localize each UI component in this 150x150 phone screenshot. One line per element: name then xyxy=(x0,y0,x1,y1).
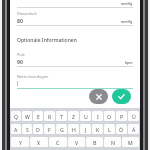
staticText: X xyxy=(37,139,41,146)
button[interactable]: N xyxy=(104,137,121,147)
staticText: 90 xyxy=(17,58,23,65)
button[interactable]: Puls xyxy=(17,52,133,67)
button[interactable]: Notiz hinzufügen xyxy=(17,74,133,89)
button[interactable]: O xyxy=(104,111,115,121)
staticText: Diastolisch xyxy=(17,11,37,16)
button[interactable]: Y xyxy=(11,137,29,147)
button[interactable]: D xyxy=(33,124,43,134)
button[interactable]: V xyxy=(68,137,85,147)
staticText: mmHg xyxy=(121,1,133,6)
button[interactable]: Diastolisch xyxy=(17,11,133,26)
staticText: P xyxy=(120,113,124,120)
button[interactable]: Ü xyxy=(128,111,139,121)
staticText: C xyxy=(56,139,60,146)
button[interactable]: A xyxy=(11,124,21,134)
staticText: Q xyxy=(14,113,19,120)
staticText: E xyxy=(37,113,40,120)
staticText: N xyxy=(111,139,115,146)
button[interactable]: I xyxy=(92,111,103,121)
staticText: J xyxy=(85,126,87,133)
staticText: Ü xyxy=(132,113,136,120)
staticText: I xyxy=(97,113,99,120)
button[interactable]: Ä xyxy=(128,124,139,134)
staticText: V xyxy=(75,139,79,146)
staticText: Notiz hinzufügen xyxy=(17,74,49,79)
button[interactable]: Q xyxy=(11,111,21,121)
staticText: D xyxy=(36,126,40,133)
staticText: S xyxy=(26,126,29,133)
button[interactable]: M xyxy=(122,137,139,147)
button[interactable]: K xyxy=(92,124,103,134)
button[interactable]: G xyxy=(56,124,67,134)
staticText: U xyxy=(84,113,88,120)
staticText: G xyxy=(60,126,64,133)
button[interactable]: S xyxy=(22,124,32,134)
staticText: F xyxy=(48,126,51,133)
button[interactable]: U xyxy=(80,111,91,121)
button[interactable]: Z xyxy=(68,111,79,121)
button[interactable]: T xyxy=(56,111,67,121)
staticText: mmHg xyxy=(121,19,133,24)
staticText: Ä xyxy=(132,126,136,133)
button[interactable]: Speichern xyxy=(112,89,131,104)
button[interactable]: R xyxy=(44,111,55,121)
staticText: Optionale Informationen xyxy=(17,37,77,44)
button[interactable]: C xyxy=(49,137,67,147)
button[interactable]: B xyxy=(86,137,103,147)
button[interactable]: X xyxy=(30,137,48,147)
staticText: K xyxy=(96,126,100,133)
staticText: Y xyxy=(19,139,22,146)
button[interactable]: E xyxy=(33,111,43,121)
staticText: O xyxy=(107,113,112,120)
staticText: M xyxy=(128,139,133,146)
staticText: W xyxy=(25,113,30,120)
button[interactable]: H xyxy=(68,124,79,134)
staticText: bpm xyxy=(125,60,133,65)
staticText: B xyxy=(93,139,97,146)
staticText: L xyxy=(108,126,111,133)
staticText: Z xyxy=(72,113,75,120)
button[interactable]: Ö xyxy=(116,124,127,134)
staticText: A xyxy=(14,126,18,133)
button[interactable]: F xyxy=(44,124,55,134)
button[interactable]: P xyxy=(116,111,127,121)
staticText: H xyxy=(72,126,76,133)
staticText: Ö xyxy=(119,126,124,133)
button[interactable]: W xyxy=(22,111,32,121)
button[interactable]: J xyxy=(80,124,91,134)
button[interactable]: L xyxy=(104,124,115,134)
staticText: 80 xyxy=(17,17,23,24)
staticText: R xyxy=(48,113,52,120)
staticText: T xyxy=(60,113,63,120)
staticText: Puls xyxy=(17,52,25,57)
button[interactable]: Abbrechen xyxy=(89,89,108,104)
